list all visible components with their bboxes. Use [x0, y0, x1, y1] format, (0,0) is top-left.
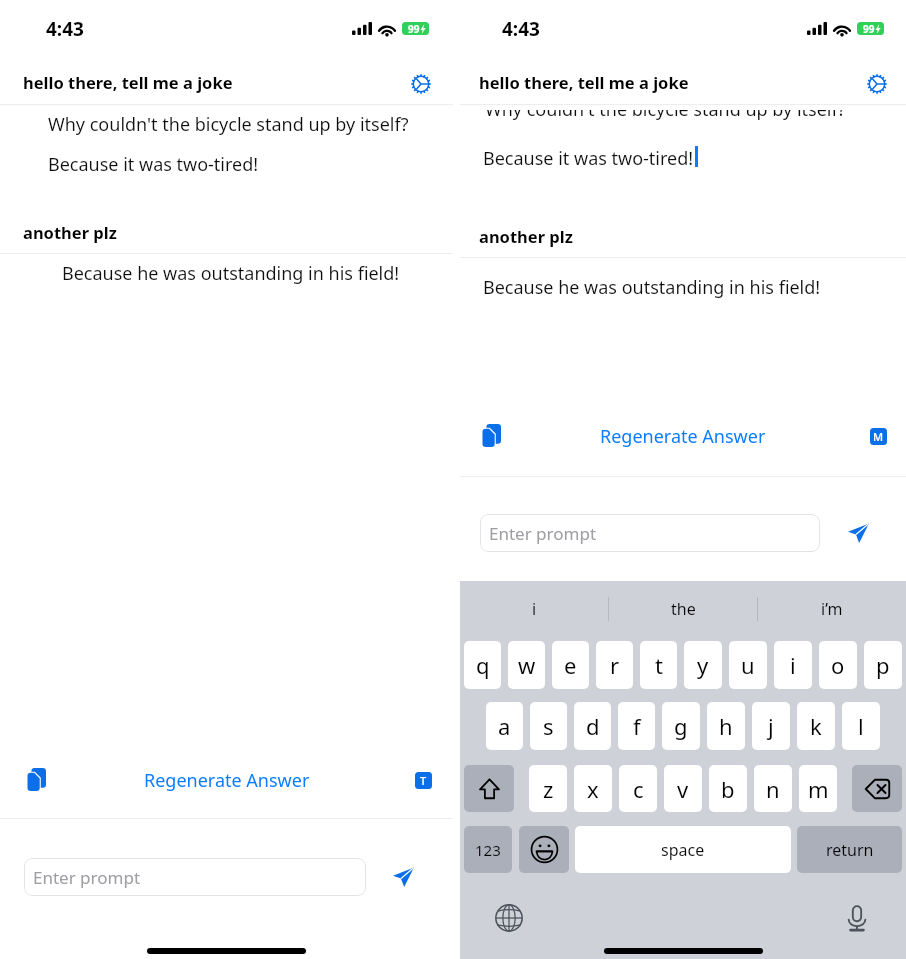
staticText: z [543, 774, 554, 804]
staticText: hello there, tell me a joke [23, 71, 233, 93]
button[interactable]: Text mode [860, 418, 896, 454]
staticText: Because he was outstanding in his field! [483, 275, 821, 300]
staticText: Because he was outstanding in his field! [62, 261, 400, 286]
staticText: 4:43 [502, 16, 540, 42]
button[interactable]: Text mode [405, 762, 441, 798]
staticText: o [831, 650, 845, 680]
staticText: v [677, 774, 689, 804]
staticText: another plz [23, 221, 117, 243]
button[interactable]: w [508, 641, 545, 689]
button[interactable]: Settings [404, 67, 438, 101]
button[interactable]: a [486, 702, 523, 750]
button[interactable]: y [684, 641, 722, 689]
button[interactable]: z [529, 765, 567, 812]
button[interactable]: x [574, 765, 612, 812]
staticText: s [543, 711, 554, 741]
staticText: n [766, 774, 780, 804]
button[interactable]: n [754, 765, 792, 812]
staticText: return [826, 839, 874, 861]
staticText: m [808, 774, 829, 804]
staticText: Regenerate Answer [600, 424, 766, 449]
button[interactable]: Regenerate Answer [134, 762, 320, 799]
button[interactable]: j [752, 702, 790, 750]
staticText: Why couldn't the bicycle stand up by its… [48, 112, 409, 137]
staticText: Regenerate Answer [144, 768, 310, 793]
button[interactable]: l [842, 702, 880, 750]
staticText: i [790, 650, 796, 680]
staticText: q [476, 650, 490, 680]
staticText: j [768, 711, 774, 741]
button[interactable]: b [709, 765, 747, 812]
button[interactable]: Numbers [464, 826, 512, 873]
staticText: k [810, 711, 822, 741]
staticText: c [633, 774, 644, 804]
staticText: a [498, 711, 511, 741]
button[interactable]: s [530, 702, 567, 750]
staticText: 123 [475, 840, 501, 860]
button[interactable]: p [864, 641, 902, 689]
staticText: h [719, 711, 733, 741]
button[interactable]: Enter prompt [24, 858, 366, 896]
staticText: hello there, tell me a joke [479, 71, 689, 93]
button[interactable]: Shift [464, 765, 514, 812]
staticText: r [610, 650, 620, 680]
button[interactable]: Send [384, 858, 422, 896]
staticText: 99 [408, 22, 420, 35]
staticText: p [876, 650, 890, 680]
staticText: y [697, 650, 709, 680]
staticText: 99 [863, 22, 875, 35]
button[interactable]: Emoji [519, 826, 569, 873]
staticText: Because it was two-tired! [48, 152, 259, 177]
staticText: the [671, 598, 696, 620]
button[interactable]: h [707, 702, 745, 750]
button[interactable]: v [664, 765, 702, 812]
staticText: d [586, 711, 600, 741]
button[interactable]: Send [839, 514, 877, 552]
button[interactable]: e [552, 641, 589, 689]
staticText: another plz [479, 225, 573, 247]
staticText: 4:43 [46, 16, 84, 42]
staticText: Enter prompt [33, 866, 141, 889]
button[interactable]: f [618, 702, 655, 750]
staticText: u [741, 650, 755, 680]
staticText: Enter prompt [489, 522, 597, 545]
button[interactable]: Regenerate Answer [590, 418, 776, 455]
button[interactable]: Dictate [841, 902, 873, 934]
button[interactable]: the [609, 581, 757, 637]
button[interactable]: Enter prompt [480, 514, 820, 552]
button[interactable]: Change keyboard [493, 902, 525, 934]
button[interactable]: d [574, 702, 611, 750]
button[interactable]: Settings [860, 67, 894, 101]
button[interactable]: k [797, 702, 835, 750]
staticText: M [873, 429, 884, 444]
staticText: x [587, 774, 599, 804]
staticText: e [564, 650, 577, 680]
button[interactable]: i’m [758, 581, 906, 637]
button[interactable]: u [729, 641, 767, 689]
button[interactable]: Return [797, 826, 902, 873]
staticText: b [721, 774, 735, 804]
staticText: i [532, 598, 537, 620]
staticText: g [674, 711, 688, 741]
staticText: Because it was two-tired! [483, 146, 694, 171]
staticText: space [661, 839, 705, 861]
button[interactable]: i [774, 641, 812, 689]
button[interactable]: m [799, 765, 837, 812]
button[interactable]: Backspace [852, 765, 902, 812]
button[interactable]: Copy [473, 418, 509, 454]
staticText: w [518, 650, 536, 680]
staticText: T [420, 773, 427, 788]
button[interactable]: g [662, 702, 700, 750]
staticText: i’m [821, 598, 843, 620]
button[interactable]: q [464, 641, 501, 689]
button[interactable]: i [460, 581, 608, 637]
button[interactable]: c [619, 765, 657, 812]
button[interactable]: o [819, 641, 857, 689]
button[interactable]: t [640, 641, 677, 689]
button[interactable]: Copy [18, 762, 54, 798]
staticText: f [633, 711, 641, 741]
button[interactable]: r [596, 641, 633, 689]
button[interactable]: space [575, 826, 791, 873]
staticText: t [655, 650, 663, 680]
staticText: Why couldn't the bicycle stand up by its… [485, 97, 846, 122]
